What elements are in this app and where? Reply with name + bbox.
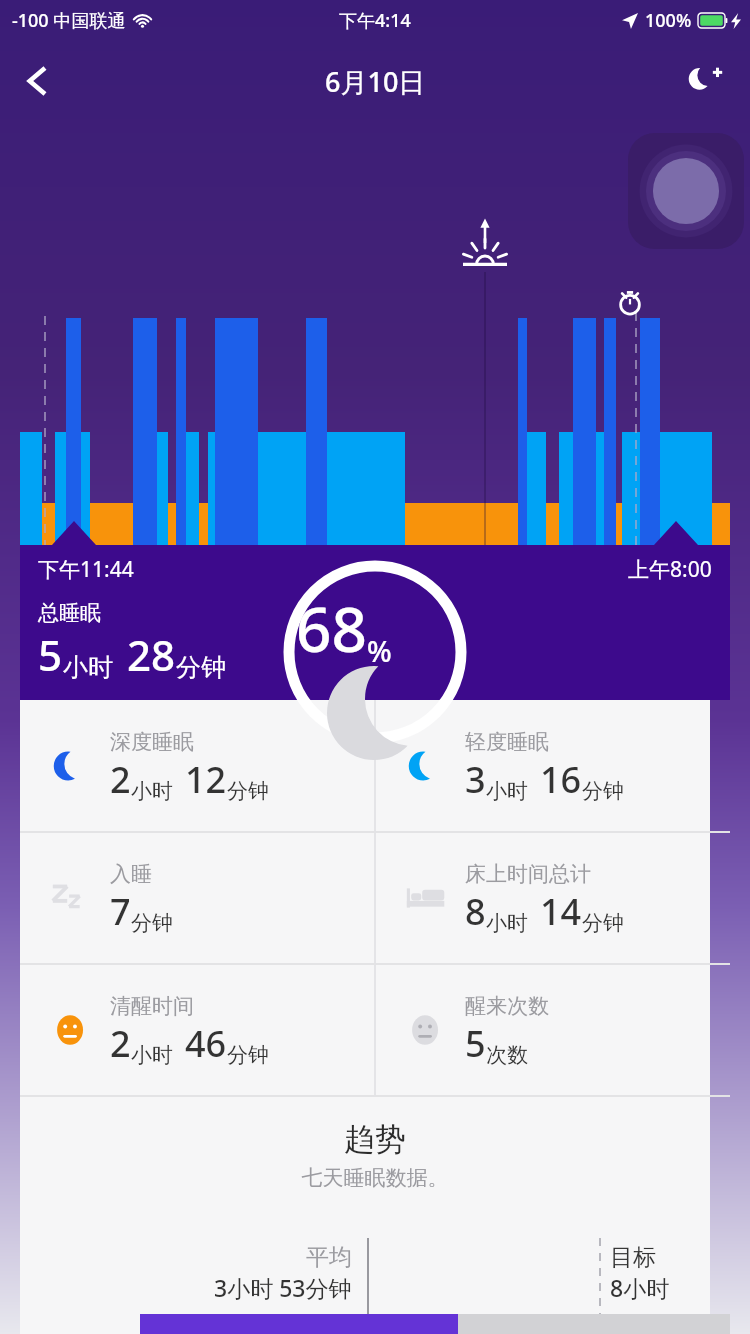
button[interactable]: 入睡 xyxy=(20,832,375,964)
staticText: 5 xyxy=(465,1019,486,1068)
staticText: 2 xyxy=(110,755,131,804)
button[interactable]: 下午11:44 xyxy=(20,545,730,700)
staticText: 轻度睡眠 xyxy=(465,729,549,755)
staticText: 小时 xyxy=(131,778,173,804)
staticText: 46 xyxy=(185,1019,227,1068)
staticText: 分钟 xyxy=(227,778,269,804)
staticText: 3 xyxy=(465,755,486,804)
staticText: 分钟 xyxy=(176,652,226,683)
staticText: 2 xyxy=(110,1019,131,1068)
button[interactable]: 深度睡眠 xyxy=(20,700,375,832)
button[interactable]: Back xyxy=(8,52,66,110)
staticText: 七天睡眠数据。 xyxy=(20,1165,730,1191)
staticText: 分钟 xyxy=(131,910,173,936)
staticText: 分钟 xyxy=(582,910,624,936)
staticText: 6月10日 xyxy=(325,63,426,100)
staticText: 平均 xyxy=(306,1243,352,1272)
button[interactable]: 轻度睡眠 xyxy=(375,700,730,832)
staticText: 目标 xyxy=(610,1243,656,1272)
staticText: 小时 xyxy=(63,652,113,683)
staticText: 12 xyxy=(185,755,227,804)
staticText: 小时 xyxy=(131,1042,173,1068)
staticText: % xyxy=(367,631,392,670)
staticText: 100% xyxy=(645,8,692,33)
staticText: 7 xyxy=(110,887,131,936)
staticText: 分钟 xyxy=(227,1042,269,1068)
button[interactable]: 床上时间总计 xyxy=(375,832,730,964)
staticText: 分钟 xyxy=(582,778,624,804)
button[interactable]: Add sleep xyxy=(676,51,736,111)
staticText: 总睡眠 xyxy=(38,600,101,626)
staticText: 上午8:00 xyxy=(628,555,712,584)
staticText: 深度睡眠 xyxy=(110,729,194,755)
staticText: 次数 xyxy=(486,1042,528,1068)
staticText: 床上时间总计 xyxy=(465,861,591,887)
staticText: 16 xyxy=(540,755,582,804)
staticText: 下午4:14 xyxy=(339,8,411,33)
staticText: 68 xyxy=(296,586,367,670)
staticText: 8 xyxy=(465,887,486,936)
button[interactable]: 醒来次数 xyxy=(375,964,730,1096)
staticText: 8小时 xyxy=(610,1272,670,1303)
staticText: 14 xyxy=(540,887,582,936)
staticText: 3小时 53分钟 xyxy=(214,1272,352,1303)
staticText: 清醒时间 xyxy=(110,993,194,1019)
staticText: 5 xyxy=(38,626,63,683)
button[interactable]: 趋势 xyxy=(20,1100,730,1191)
staticText: 28 xyxy=(127,626,176,683)
button[interactable]: 清醒时间 xyxy=(20,964,375,1096)
staticText: 下午11:44 xyxy=(38,555,134,584)
staticText: 小时 xyxy=(486,778,528,804)
staticText: 醒来次数 xyxy=(465,993,549,1019)
staticText: 入睡 xyxy=(110,861,152,887)
staticText: 小时 xyxy=(486,910,528,936)
staticText: -100 中国联通 xyxy=(12,8,126,33)
staticText: 趋势 xyxy=(20,1120,730,1159)
